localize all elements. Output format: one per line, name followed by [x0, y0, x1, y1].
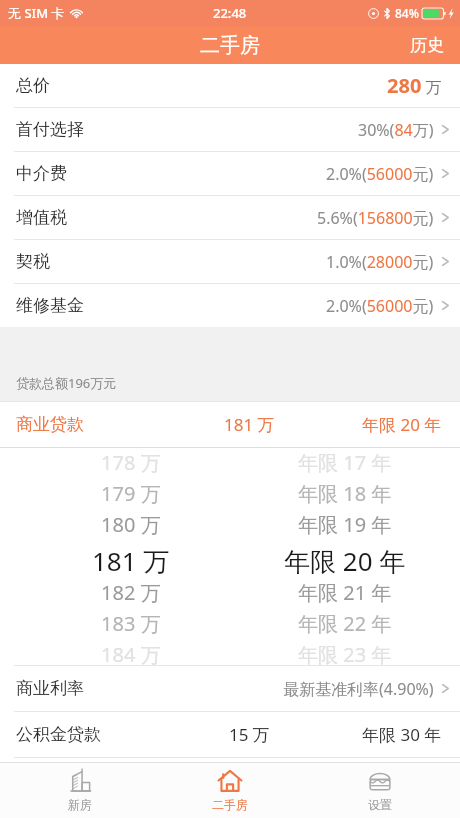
staticText: 183 万 — [101, 610, 161, 637]
staticText: 二手房 — [212, 797, 248, 812]
staticText: 二手房 — [200, 33, 260, 58]
staticText: 年限 20 年 — [284, 543, 406, 574]
button[interactable]: 设置 — [310, 762, 450, 818]
staticText: 年限 21 年 — [298, 579, 392, 606]
staticText: 184 万 — [101, 641, 161, 668]
staticText: 总价 — [16, 75, 50, 96]
staticText: 181 万 — [224, 413, 275, 436]
staticText: 2.0%(56000元) — [326, 163, 434, 185]
button[interactable]: 中介费 — [0, 152, 460, 195]
staticText: 年限 22 年 — [298, 610, 392, 637]
button[interactable]: 商业贷款 — [0, 402, 460, 447]
staticText: 178 万 — [101, 449, 161, 476]
staticText: 贷款总额196万元 — [16, 374, 117, 392]
staticText: 新房 — [68, 797, 92, 812]
staticText: 22:48 — [213, 4, 247, 22]
staticText: 年限 17 年 — [298, 449, 392, 476]
staticText: 1.0%(28000元) — [326, 251, 434, 273]
staticText: 180 万 — [101, 511, 161, 538]
button[interactable]: 维修基金 — [0, 284, 460, 327]
staticText: 无 SIM 卡 — [8, 4, 65, 22]
button[interactable]: 商业利率 — [0, 666, 460, 711]
staticText: 商业利率 — [16, 678, 84, 699]
staticText: 182 万 — [101, 579, 161, 606]
staticText: 179 万 — [101, 480, 161, 507]
staticText: 181 万 — [92, 543, 170, 574]
staticText: 30%(84万) — [358, 119, 434, 141]
button[interactable]: 二手房 — [160, 762, 300, 818]
button[interactable]: 历史 — [394, 26, 460, 64]
button[interactable]: 增值税 — [0, 196, 460, 239]
staticText: 年限 19 年 — [298, 511, 392, 538]
staticText: 280 万 — [387, 72, 442, 99]
button[interactable]: 契税 — [0, 240, 460, 283]
staticText: 最新基准利率(4.90%) — [283, 678, 434, 700]
staticText: 设置 — [368, 797, 392, 812]
button[interactable]: 公积金贷款 — [0, 712, 460, 757]
button[interactable]: 新房 — [10, 762, 150, 818]
staticText: 公积金贷款 — [16, 724, 101, 745]
staticText: 年限 30 年 — [362, 723, 442, 746]
staticText: 商业贷款 — [16, 414, 84, 435]
staticText: 增值税 — [16, 207, 67, 228]
staticText: 年限 18 年 — [298, 480, 392, 507]
button[interactable]: 首付选择 — [0, 108, 460, 151]
button[interactable]: 总价 — [0, 64, 460, 107]
staticText: 中介费 — [16, 163, 67, 184]
staticText: 契税 — [16, 251, 50, 272]
staticText: 维修基金 — [16, 295, 84, 316]
staticText: 15 万 — [229, 723, 270, 746]
staticText: 首付选择 — [16, 119, 84, 140]
staticText: 84% — [395, 5, 419, 21]
staticText: 年限 23 年 — [298, 641, 392, 668]
staticText: 年限 20 年 — [362, 413, 442, 436]
staticText: 2.0%(56000元) — [326, 295, 434, 317]
staticText: 历史 — [410, 35, 444, 56]
staticText: 5.6%(156800元) — [317, 207, 434, 229]
